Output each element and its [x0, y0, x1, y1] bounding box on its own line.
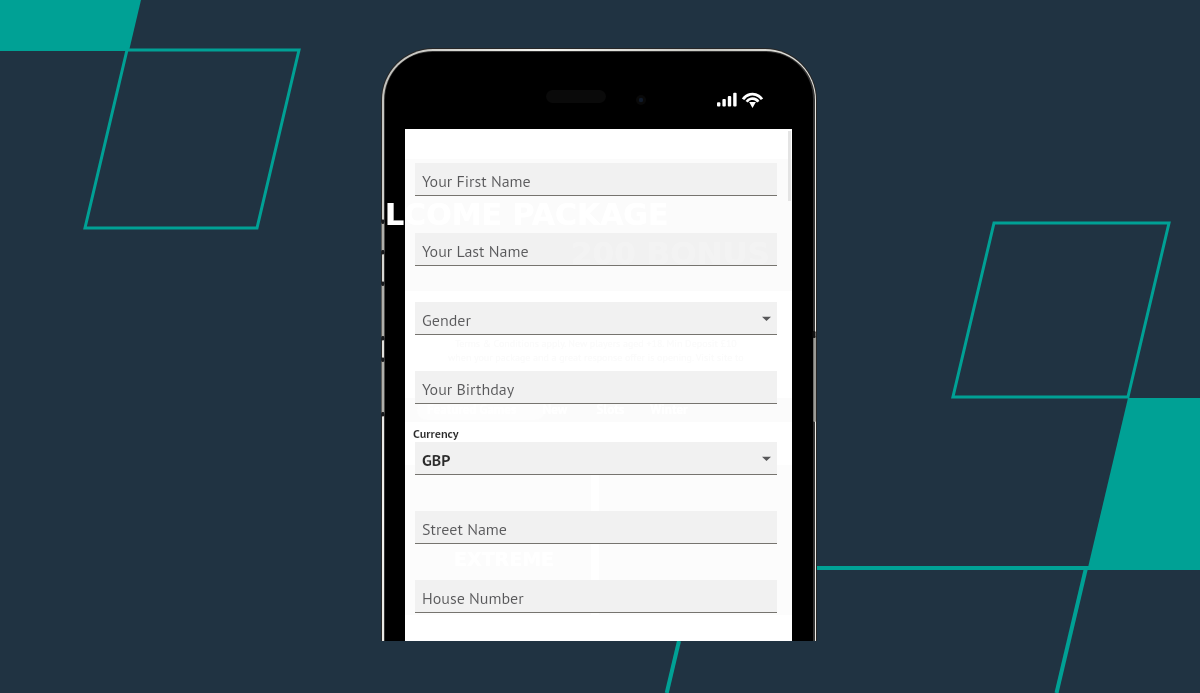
button[interactable]: GBP: [415, 442, 777, 475]
button[interactable]: Street Name: [415, 511, 777, 544]
staticText: GBP: [422, 450, 451, 471]
other: Open dropdown: [762, 314, 771, 323]
staticText: LCOME PACKAGE: [385, 197, 669, 232]
staticText: Your Birthday: [422, 379, 515, 400]
staticText: Your Last Name: [422, 241, 529, 262]
staticText: House Number: [422, 588, 524, 609]
staticText: Your First Name: [422, 171, 531, 192]
staticText: Online Casino: [510, 161, 692, 183]
staticText: Currency: [413, 426, 459, 442]
button[interactable]: Your Last Name: [415, 233, 777, 266]
other: Open dropdown: [762, 454, 771, 463]
staticText: Street Name: [422, 519, 507, 540]
button[interactable]: Your First Name: [415, 163, 777, 196]
staticText: 200 BONUS: [571, 235, 770, 271]
staticText: Gender: [422, 310, 471, 331]
button[interactable]: House Number: [415, 580, 777, 613]
staticText: Featured Games New Slots Winter: [427, 401, 688, 418]
button[interactable]: Your Birthday: [415, 371, 777, 404]
button[interactable]: Gender: [415, 302, 777, 335]
